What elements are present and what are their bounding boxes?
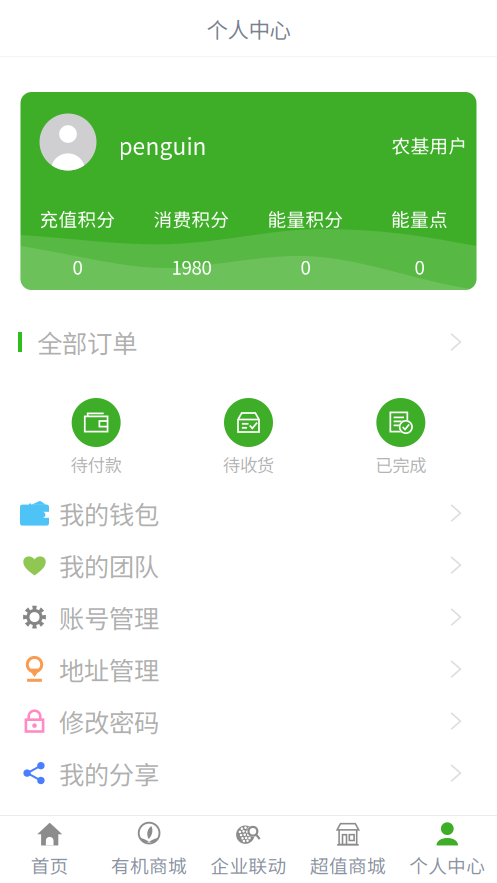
staticText: 消费积分 (153, 205, 229, 232)
button[interactable]: 全部订单 (0, 316, 497, 368)
staticText: 有机商城 (111, 851, 187, 878)
staticText: 修改密码 (59, 703, 159, 739)
staticText: 企业联动 (210, 851, 286, 878)
button[interactable]: 我的团队 (0, 539, 497, 591)
staticText: 待收货 (223, 452, 274, 477)
staticText: penguin (118, 129, 206, 161)
staticText: 1980 (171, 253, 211, 280)
button[interactable]: 企业联动 (199, 811, 298, 883)
staticText: 地址管理 (59, 651, 159, 687)
staticText: 已完成 (375, 452, 426, 477)
staticText: 农基用户 (391, 131, 467, 158)
staticText: 0 (72, 253, 82, 280)
staticText: 我的分享 (59, 755, 159, 791)
button[interactable]: 已完成 (325, 398, 477, 477)
staticText: 个人中心 (206, 13, 290, 44)
staticText: 账号管理 (59, 599, 159, 635)
button[interactable]: 地址管理 (0, 643, 497, 695)
button[interactable]: 有机商城 (99, 811, 199, 883)
button[interactable]: 修改密码 (0, 695, 497, 747)
staticText: 首页 (31, 851, 69, 878)
button[interactable]: 我的钱包 (0, 487, 497, 539)
button[interactable]: 待收货 (172, 398, 325, 477)
button[interactable]: 个人中心 (398, 811, 497, 883)
staticText: 全部订单 (37, 324, 137, 360)
staticText: 0 (414, 253, 424, 280)
button[interactable]: 待付款 (20, 398, 172, 477)
staticText: 能量积分 (267, 205, 343, 232)
staticText: 我的团队 (59, 547, 159, 583)
button[interactable]: 我的分享 (0, 747, 497, 799)
staticText: 能量点 (391, 205, 448, 232)
staticText: 超值商城 (310, 851, 386, 878)
staticText: 0 (300, 253, 310, 280)
button[interactable]: 账号管理 (0, 591, 497, 643)
button[interactable]: 超值商城 (298, 811, 398, 883)
staticText: 个人中心 (409, 851, 485, 878)
staticText: 充值积分 (39, 205, 115, 232)
button[interactable]: 首页 (0, 811, 99, 883)
staticText: 我的钱包 (59, 495, 159, 531)
staticText: 待付款 (71, 452, 122, 477)
